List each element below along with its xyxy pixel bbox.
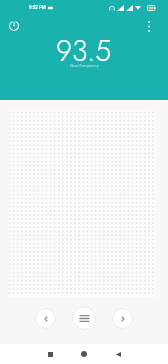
button[interactable]: Home <box>74 344 94 364</box>
button[interactable]: Next station <box>112 308 133 329</box>
button[interactable]: Previous station <box>35 308 56 329</box>
button[interactable]: Station list <box>72 306 96 330</box>
staticText: 9:52 PM <box>29 5 46 10</box>
button[interactable]: Back <box>108 344 128 364</box>
staticText: 93.5 <box>56 31 112 72</box>
staticText: New Frequency <box>70 63 99 68</box>
button[interactable]: Recent apps <box>40 344 60 364</box>
button[interactable]: More options <box>136 13 162 39</box>
button[interactable]: Power <box>1 13 27 39</box>
